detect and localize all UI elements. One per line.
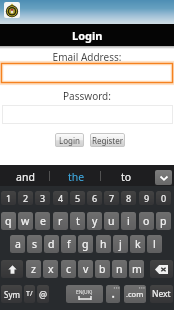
button[interactable]: 8	[121, 191, 136, 205]
button[interactable]: r	[53, 212, 68, 230]
staticText: .com	[126, 289, 144, 299]
staticText: Password:	[0, 89, 174, 103]
staticText: r	[58, 214, 63, 228]
button[interactable]: Sym	[1, 285, 22, 303]
staticText: 6	[92, 192, 98, 204]
staticText: s	[32, 237, 38, 251]
button[interactable]: to	[101, 167, 152, 187]
button[interactable]: f	[61, 235, 76, 253]
button[interactable]: m	[129, 260, 144, 278]
button[interactable]: l	[147, 235, 162, 253]
button[interactable]: 2	[18, 191, 33, 205]
staticText: Next	[152, 288, 171, 300]
button[interactable]: Space	[66, 285, 103, 303]
button[interactable]: n	[112, 260, 127, 278]
button[interactable]: q	[1, 212, 16, 230]
staticText: g	[82, 237, 89, 251]
button[interactable]: a	[10, 235, 25, 253]
staticText: v	[83, 262, 89, 276]
button[interactable]: v	[78, 260, 93, 278]
button[interactable]: @	[37, 285, 49, 303]
button[interactable]: g	[78, 235, 93, 253]
staticText: 7	[109, 192, 115, 204]
staticText: to	[121, 170, 132, 184]
button[interactable]: x	[43, 260, 58, 278]
button[interactable]: Period	[106, 285, 120, 303]
button[interactable]: Next	[150, 285, 173, 303]
staticText: f	[67, 237, 71, 251]
button[interactable]: 5	[70, 191, 85, 205]
button[interactable]: u	[104, 212, 119, 230]
button[interactable]: i	[121, 212, 136, 230]
button[interactable]: b	[95, 260, 110, 278]
staticText: t	[76, 214, 80, 228]
button[interactable]: z	[26, 260, 41, 278]
staticText: m	[132, 262, 142, 276]
staticText: j	[119, 237, 122, 251]
button[interactable]: 6	[87, 191, 102, 205]
button[interactable]: w	[18, 212, 33, 230]
button[interactable]: .com	[124, 285, 146, 303]
staticText: the	[68, 170, 85, 184]
button[interactable]	[0, 62, 174, 84]
staticText: z	[31, 262, 36, 276]
staticText: and	[16, 170, 35, 184]
button[interactable]: p	[156, 212, 171, 230]
staticText: Sym	[4, 289, 20, 300]
button[interactable]: h	[96, 235, 111, 253]
button[interactable]: Backspace	[150, 260, 173, 278]
staticText: EN(UK)	[76, 289, 93, 296]
button[interactable]: 0	[156, 191, 171, 205]
staticText: k	[135, 237, 141, 251]
button[interactable]: d	[44, 235, 59, 253]
button[interactable]: Language	[24, 285, 35, 303]
staticText: 0	[161, 192, 167, 204]
button[interactable]: k	[130, 235, 145, 253]
staticText: Email Address:	[0, 50, 174, 64]
staticText: 2	[23, 192, 29, 204]
staticText: Login	[72, 28, 103, 43]
button[interactable]: e	[35, 212, 50, 230]
button[interactable]: c	[61, 260, 76, 278]
staticText: p	[160, 214, 167, 228]
staticText: i	[127, 214, 130, 228]
button[interactable]: s	[27, 235, 42, 253]
button[interactable]: 1	[1, 191, 16, 205]
staticText: o	[143, 214, 150, 228]
staticText: Register	[92, 135, 124, 146]
staticText: @	[39, 288, 48, 300]
staticText: u	[108, 214, 115, 228]
staticText: q	[5, 214, 12, 228]
button[interactable]: and	[0, 167, 51, 187]
staticText: 4	[58, 192, 64, 204]
staticText: c	[66, 262, 72, 276]
button[interactable]: Show more suggestions	[155, 170, 172, 185]
staticText: 5	[75, 192, 81, 204]
button[interactable]: 4	[53, 191, 68, 205]
staticText: x	[48, 262, 54, 276]
button[interactable]: the	[51, 167, 102, 187]
staticText: 9	[144, 192, 150, 204]
staticText: T/	[26, 289, 33, 299]
button[interactable]: y	[87, 212, 102, 230]
staticText: 1	[6, 192, 12, 204]
staticText: n	[116, 262, 123, 276]
button[interactable]: Shift	[1, 260, 23, 278]
button[interactable]: o	[139, 212, 154, 230]
button[interactable]: Register	[90, 133, 125, 147]
staticText: a	[15, 237, 21, 251]
button[interactable]: Login	[55, 133, 84, 147]
staticText: h	[100, 237, 107, 251]
staticText: 8	[126, 192, 132, 204]
button[interactable]: t	[70, 212, 85, 230]
button[interactable]	[2, 105, 173, 124]
button[interactable]: 3	[35, 191, 50, 205]
other: App icon	[4, 2, 20, 18]
button[interactable]: 9	[139, 191, 154, 205]
staticText: Login	[59, 135, 80, 146]
staticText: e	[40, 214, 46, 228]
staticText: 3	[40, 192, 46, 204]
button[interactable]: 7	[104, 191, 119, 205]
button[interactable]: j	[113, 235, 128, 253]
staticText: y	[92, 214, 98, 228]
